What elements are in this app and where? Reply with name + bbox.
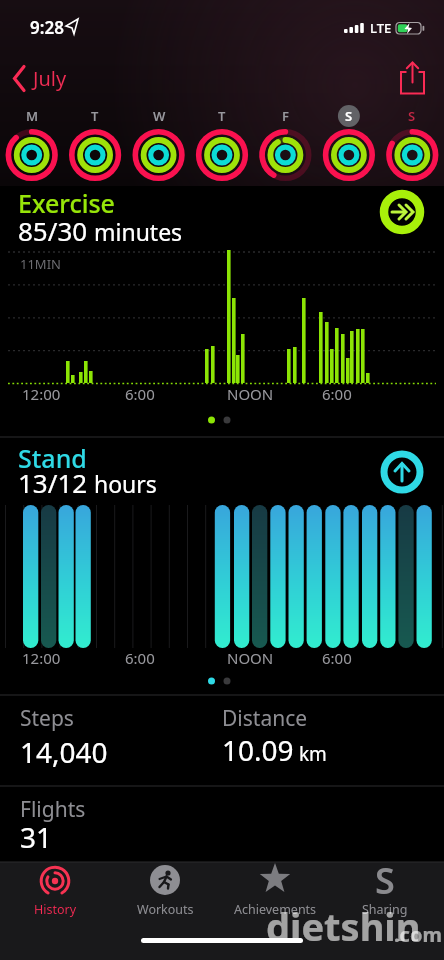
staticText: M xyxy=(26,107,39,125)
staticText: Workouts xyxy=(137,901,194,918)
button[interactable]: Sharing xyxy=(330,862,440,932)
staticText: NOON xyxy=(227,648,274,668)
staticText: hours xyxy=(88,468,157,499)
button[interactable] xyxy=(380,450,424,494)
staticText: NOON xyxy=(227,384,274,404)
staticText: Exercise xyxy=(18,186,115,220)
staticText: W xyxy=(153,107,166,125)
staticText: 12:00 xyxy=(22,384,61,404)
button[interactable]: July xyxy=(8,58,88,96)
staticText: 9:28 xyxy=(30,16,64,39)
staticText: 12:00 xyxy=(22,648,61,668)
staticText: km xyxy=(294,741,327,767)
button[interactable]: F xyxy=(265,107,305,155)
button[interactable] xyxy=(392,56,436,100)
staticText: 14,040 xyxy=(20,733,108,771)
staticText: 6:00 xyxy=(322,648,352,668)
staticText: Achievements xyxy=(234,901,317,918)
staticText: 11MIN xyxy=(20,255,61,273)
staticText: T xyxy=(218,107,226,125)
staticText: T xyxy=(91,107,99,125)
staticText: July xyxy=(33,65,67,92)
button[interactable]: S xyxy=(392,107,432,155)
staticText: 31 xyxy=(20,818,53,856)
staticText: Distance xyxy=(222,704,308,733)
staticText: 6:00 xyxy=(322,384,352,404)
button[interactable] xyxy=(0,240,444,410)
staticText: 10.09 xyxy=(222,731,294,769)
staticText: History xyxy=(34,901,77,918)
button[interactable]: M xyxy=(12,107,52,155)
staticText: 6:00 xyxy=(125,648,155,668)
staticText: Steps xyxy=(20,704,74,733)
staticText: S xyxy=(345,107,353,125)
staticText: Sharing xyxy=(362,901,408,918)
staticText: minutes xyxy=(88,216,183,247)
staticText: dietshin xyxy=(266,900,421,952)
staticText: S xyxy=(375,856,395,896)
staticText: Flights xyxy=(20,795,86,824)
button[interactable] xyxy=(380,190,424,234)
button[interactable]: T xyxy=(202,107,242,155)
staticText: F xyxy=(282,107,289,125)
button[interactable]: S xyxy=(329,107,369,155)
button[interactable]: T xyxy=(75,107,115,155)
staticText: .com xyxy=(394,921,442,948)
button[interactable]: Workouts xyxy=(110,862,220,932)
staticText: 13/12 xyxy=(18,465,88,500)
staticText: S xyxy=(408,107,416,125)
button[interactable]: History xyxy=(0,862,110,932)
staticText: Stand xyxy=(18,441,87,475)
button[interactable]: Achievements xyxy=(220,862,330,932)
button[interactable] xyxy=(0,500,444,675)
staticText: 6:00 xyxy=(125,384,155,404)
staticText: LTE xyxy=(370,19,392,37)
button[interactable]: W xyxy=(139,107,179,155)
staticText: 85/30 xyxy=(18,213,88,248)
